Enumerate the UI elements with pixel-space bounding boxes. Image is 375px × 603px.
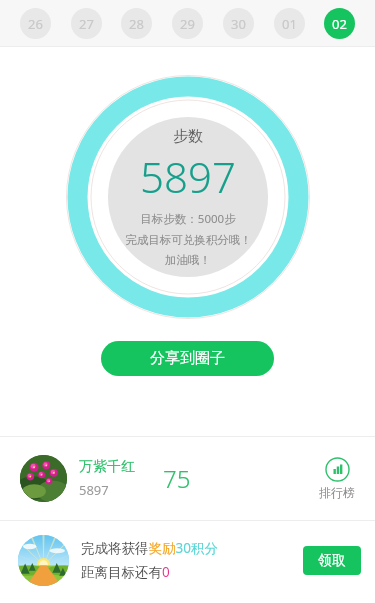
staticText: 距离目标还有0 [81,563,170,581]
staticText: 加油哦！ [165,253,211,267]
staticText: 万紫千红 [79,458,135,476]
staticText: 完成将获得奖励30积分 [81,539,218,557]
staticText: 领取 [318,552,346,570]
button[interactable]: 01 [274,8,305,39]
staticText: 75 [163,462,191,495]
staticText: 27 [79,15,94,33]
button[interactable]: 分享到圈子 [101,341,274,376]
button[interactable]: 排行榜 [313,455,361,502]
staticText: 分享到圈子 [150,349,225,368]
button[interactable]: 万紫千红 [0,437,375,520]
staticText: 目标步数：5000步 [140,211,236,227]
button[interactable]: 领取 [303,546,361,575]
button[interactable]: 30 [223,8,254,39]
staticText: 30 [231,15,246,33]
button[interactable]: 26 [20,8,51,39]
staticText: 步数 [173,127,203,146]
staticText: 5897 [140,148,236,205]
staticText: 26 [28,15,43,33]
button[interactable]: 02 [324,8,355,39]
button[interactable]: 27 [71,8,102,39]
staticText: 5897 [79,481,109,499]
staticText: 排行榜 [319,485,355,500]
button[interactable]: 28 [121,8,152,39]
staticText: 29 [180,15,195,33]
button[interactable]: 29 [172,8,203,39]
staticText: 完成目标可兑换积分哦！ [125,233,252,247]
staticText: 01 [282,15,297,33]
staticText: 28 [129,15,144,33]
staticText: 02 [332,15,347,33]
